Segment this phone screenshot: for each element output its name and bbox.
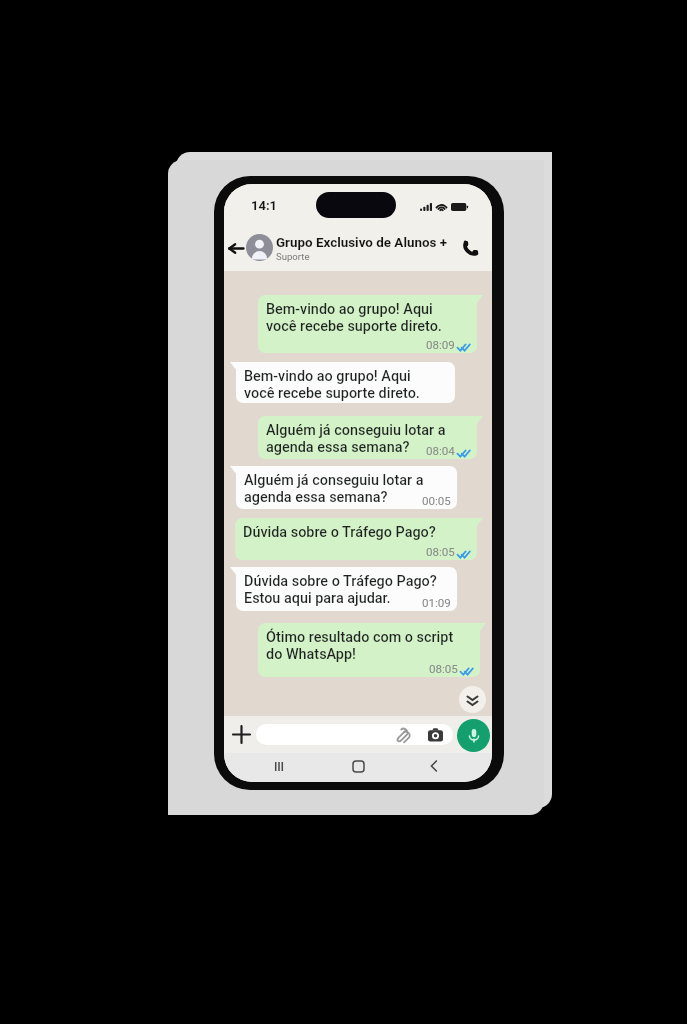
button[interactable]: Add xyxy=(230,723,253,746)
button[interactable]: Ótimo resultado com o script do WhatsApp… xyxy=(258,623,480,677)
button[interactable]: Back xyxy=(225,238,246,259)
staticText: Grupo Exclusivo de Alunos + xyxy=(276,235,448,251)
button[interactable]: Bem-vindo ao grupo! Aqui você recebe sup… xyxy=(258,295,477,353)
button[interactable]: Back xyxy=(424,756,444,776)
staticText: Suporte xyxy=(276,251,310,262)
staticText: Bem-vindo ao grupo! Aqui você recebe sup… xyxy=(266,301,442,335)
staticText: Bem-vindo ao grupo! Aqui você recebe sup… xyxy=(244,368,420,402)
button[interactable]: Camera xyxy=(428,728,443,742)
staticText: 01:09 xyxy=(422,596,451,610)
button[interactable]: Dúvida sobre o Tráfego Pago? xyxy=(235,518,477,560)
button[interactable]: Call xyxy=(460,237,481,258)
button[interactable]: Scroll to bottom xyxy=(459,686,486,713)
staticText: 08:05 xyxy=(429,662,458,676)
button[interactable] xyxy=(256,724,453,745)
button[interactable]: Voice message xyxy=(457,719,490,752)
staticText: Ótimo resultado com o script do WhatsApp… xyxy=(266,629,454,663)
button[interactable]: Dúvida sobre o Tráfego Pago? Estou aqui … xyxy=(236,567,457,611)
staticText: Dúvida sobre o Tráfego Pago? xyxy=(243,524,436,541)
staticText: 08:04 xyxy=(426,444,455,458)
staticText: Dúvida sobre o Tráfego Pago? Estou aqui … xyxy=(244,573,437,607)
button[interactable]: Alguém já conseguiu lotar a agenda essa … xyxy=(236,466,457,509)
button[interactable]: Bem-vindo ao grupo! Aqui você recebe sup… xyxy=(236,362,455,403)
staticText: 08:09 xyxy=(426,338,455,352)
button[interactable]: Home xyxy=(348,756,368,776)
button[interactable]: Alguém já conseguiu lotar a agenda essa … xyxy=(258,416,477,459)
staticText: Alguém já conseguiu lotar a agenda essa … xyxy=(244,472,424,506)
staticText: Alguém já conseguiu lotar a agenda essa … xyxy=(266,422,446,456)
staticText: 00:05 xyxy=(422,494,451,508)
button[interactable]: Recents xyxy=(269,756,289,776)
button[interactable]: Attach xyxy=(397,727,413,743)
staticText: 14:1 xyxy=(251,198,278,213)
staticText: 08:05 xyxy=(426,545,455,559)
